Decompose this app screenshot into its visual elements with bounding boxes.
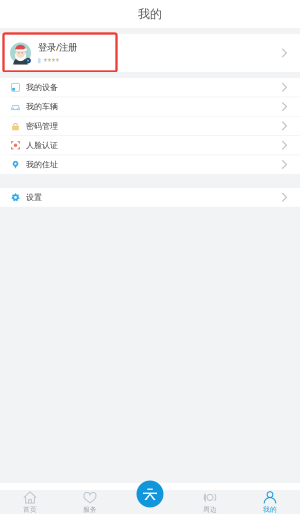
button[interactable]: 密码管理: [0, 117, 300, 136]
button[interactable]: 我的车辆: [0, 97, 300, 117]
staticText: 登录/注册: [38, 41, 77, 53]
button[interactable]: 首页: [0, 490, 60, 514]
staticText: 密码管理: [26, 121, 58, 131]
button[interactable]: ETC: [134, 478, 166, 510]
staticText: 我的住址: [26, 160, 58, 169]
staticText: 我的设备: [26, 82, 58, 92]
staticText: 周边: [203, 505, 217, 514]
staticText: 服务: [83, 505, 97, 514]
staticText: 人脸认证: [26, 140, 58, 150]
button[interactable]: 周边: [180, 490, 240, 514]
staticText: ****: [44, 56, 60, 65]
button[interactable]: 我的设备: [0, 78, 300, 97]
staticText: 我的: [138, 7, 162, 21]
button[interactable]: 登录/注册: [0, 34, 300, 72]
button[interactable]: 人脸认证: [0, 136, 300, 155]
staticText: 我的: [263, 505, 277, 514]
button[interactable]: 我的: [240, 490, 300, 514]
staticText: 设置: [26, 192, 42, 202]
staticText: 首页: [23, 505, 37, 514]
button[interactable]: 设置: [0, 188, 300, 207]
button[interactable]: 服务: [60, 490, 120, 514]
button[interactable]: 我的住址: [0, 155, 300, 174]
staticText: 我的车辆: [26, 102, 58, 112]
